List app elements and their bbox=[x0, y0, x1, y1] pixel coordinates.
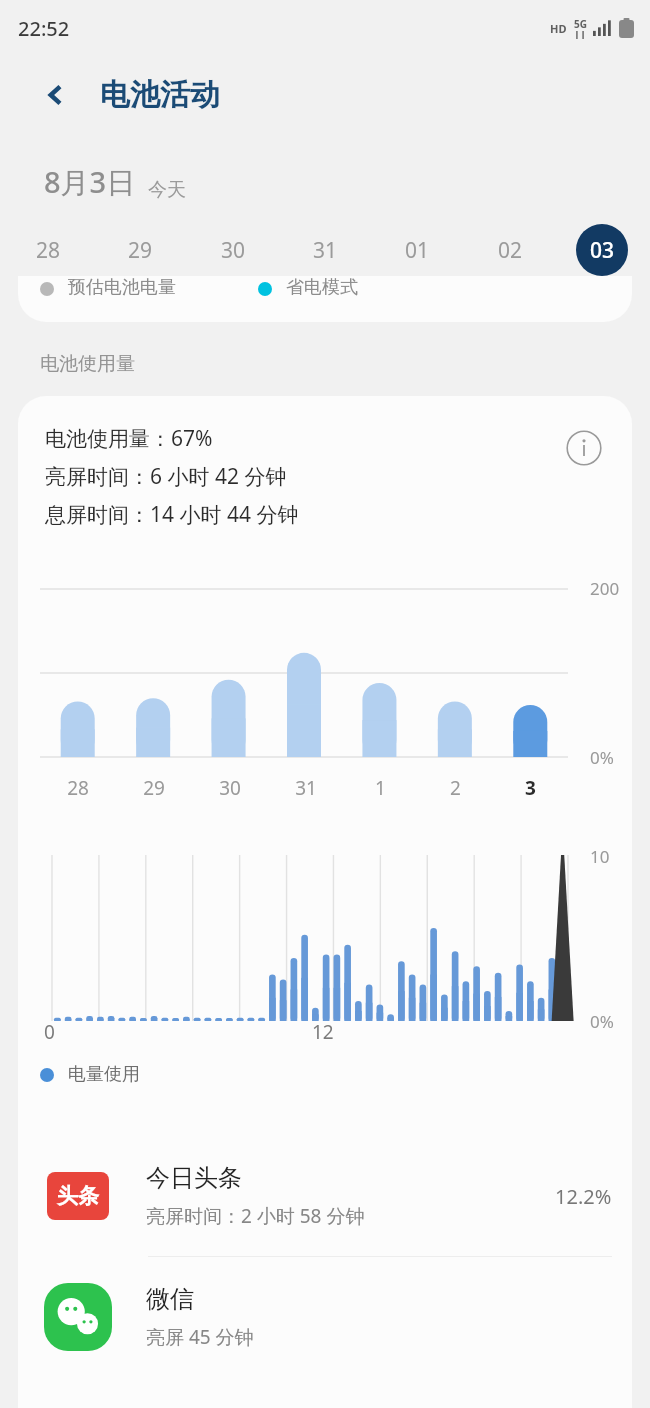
staticText: 28 bbox=[67, 775, 89, 801]
staticText: 亮屏时间：2 小时 58 分钟 bbox=[146, 1203, 365, 1229]
staticText: 电量使用 bbox=[68, 1063, 140, 1086]
button[interactable]: Info bbox=[562, 426, 606, 470]
staticText: 5G bbox=[574, 17, 587, 31]
staticText: 0% bbox=[590, 746, 614, 769]
staticText: HD bbox=[550, 21, 567, 36]
button[interactable]: 30 bbox=[207, 224, 259, 276]
staticText: 02 bbox=[498, 236, 523, 265]
button[interactable]: 29 bbox=[114, 224, 166, 276]
staticText: 12 bbox=[312, 1019, 334, 1045]
staticText: 电池使用量 bbox=[40, 352, 135, 376]
staticText: 亮屏时间：6 小时 42 分钟 bbox=[45, 462, 287, 491]
staticText: 省电模式 bbox=[286, 276, 358, 299]
staticText: 2 bbox=[450, 775, 461, 801]
staticText: 微信 bbox=[146, 1284, 194, 1314]
button[interactable]: 微信 bbox=[18, 1257, 632, 1377]
staticText: 今天 bbox=[148, 178, 186, 202]
staticText: 10 bbox=[590, 845, 610, 868]
staticText: 30 bbox=[221, 236, 246, 265]
staticText: 29 bbox=[143, 775, 165, 801]
button[interactable]: 03 bbox=[576, 224, 628, 276]
staticText: 头条 bbox=[57, 1183, 99, 1209]
staticText: 电池活动 bbox=[100, 76, 220, 114]
staticText: 31 bbox=[295, 775, 317, 801]
button[interactable]: 31 bbox=[299, 224, 351, 276]
staticText: 29 bbox=[128, 236, 153, 265]
button[interactable]: 01 bbox=[391, 224, 443, 276]
staticText: 31 bbox=[313, 236, 338, 265]
button[interactable]: 头条 bbox=[18, 1136, 632, 1256]
staticText: 息屏时间：14 小时 44 分钟 bbox=[45, 500, 299, 529]
button[interactable]: Back bbox=[34, 73, 78, 117]
staticText: 200 bbox=[590, 577, 620, 600]
staticText: 0% bbox=[590, 1010, 614, 1033]
staticText: 3 bbox=[525, 775, 536, 801]
staticText: 01 bbox=[405, 236, 430, 265]
button[interactable]: 02 bbox=[484, 224, 536, 276]
staticText: 28 bbox=[36, 236, 61, 265]
staticText: 0 bbox=[44, 1019, 55, 1045]
button[interactable]: 28 bbox=[22, 224, 74, 276]
staticText: 12.2% bbox=[555, 1183, 612, 1210]
staticText: 电池使用量：67% bbox=[45, 424, 213, 453]
staticText: 今日头条 bbox=[146, 1163, 242, 1193]
staticText: 1 bbox=[375, 775, 386, 801]
staticText: 03 bbox=[590, 236, 615, 265]
staticText: 预估电池电量 bbox=[68, 276, 176, 299]
staticText: 亮屏 45 分钟 bbox=[146, 1324, 254, 1350]
staticText: 8月3日 bbox=[44, 162, 136, 202]
staticText: 22:52 bbox=[18, 15, 70, 42]
staticText: 30 bbox=[219, 775, 241, 801]
